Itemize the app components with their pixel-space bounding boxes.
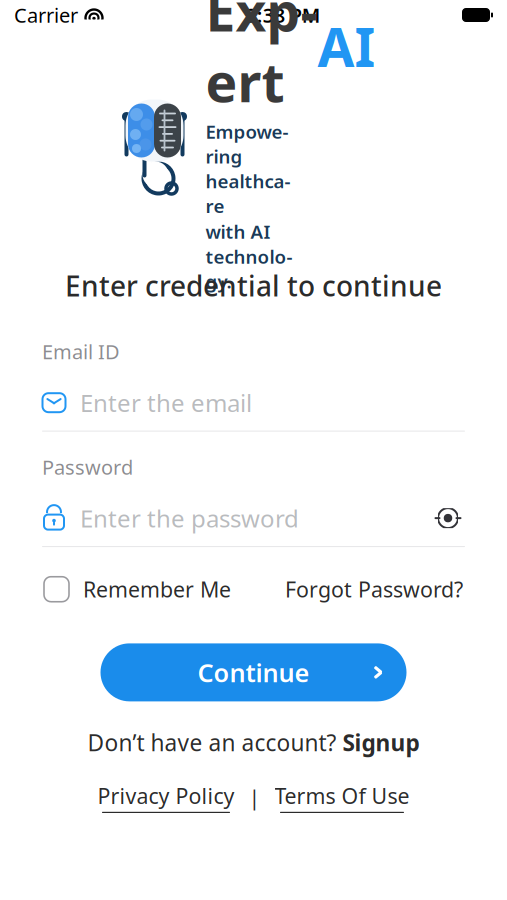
- button[interactable]: Privacy Policy: [97, 781, 234, 813]
- button[interactable]: Show password: [431, 503, 465, 533]
- staticText: |: [248, 783, 260, 811]
- staticText: Carrier: [14, 2, 78, 28]
- button[interactable]: Don’t have an account?: [87, 727, 419, 757]
- staticText: AI: [317, 11, 375, 82]
- staticText: Privacy Policy: [97, 781, 234, 810]
- staticText: Terms Of Use: [274, 781, 409, 810]
- staticText: Enter the password: [80, 502, 299, 534]
- staticText: Password: [42, 454, 133, 480]
- staticText: Forgot Password?: [285, 575, 463, 603]
- button[interactable]: Terms Of Use: [274, 781, 409, 813]
- staticText: Continue: [197, 656, 309, 689]
- staticText: Remember Me: [83, 575, 231, 603]
- staticText: Empowering healthcare: [205, 119, 290, 218]
- staticText: Enter credential to continue: [65, 267, 442, 304]
- staticText: Expert: [205, 0, 317, 117]
- staticText: 3:38 PM: [246, 2, 321, 28]
- button[interactable]: Remember Me: [44, 575, 231, 603]
- staticText: with AI technology.: [205, 219, 292, 294]
- staticText: Don’t have an account?: [87, 727, 336, 757]
- button[interactable]: Forgot Password?: [285, 575, 463, 603]
- staticText: Email ID: [42, 338, 120, 365]
- staticText: Signup: [342, 727, 419, 757]
- button[interactable]: Continue: [100, 643, 406, 701]
- staticText: Enter the email: [80, 387, 252, 419]
